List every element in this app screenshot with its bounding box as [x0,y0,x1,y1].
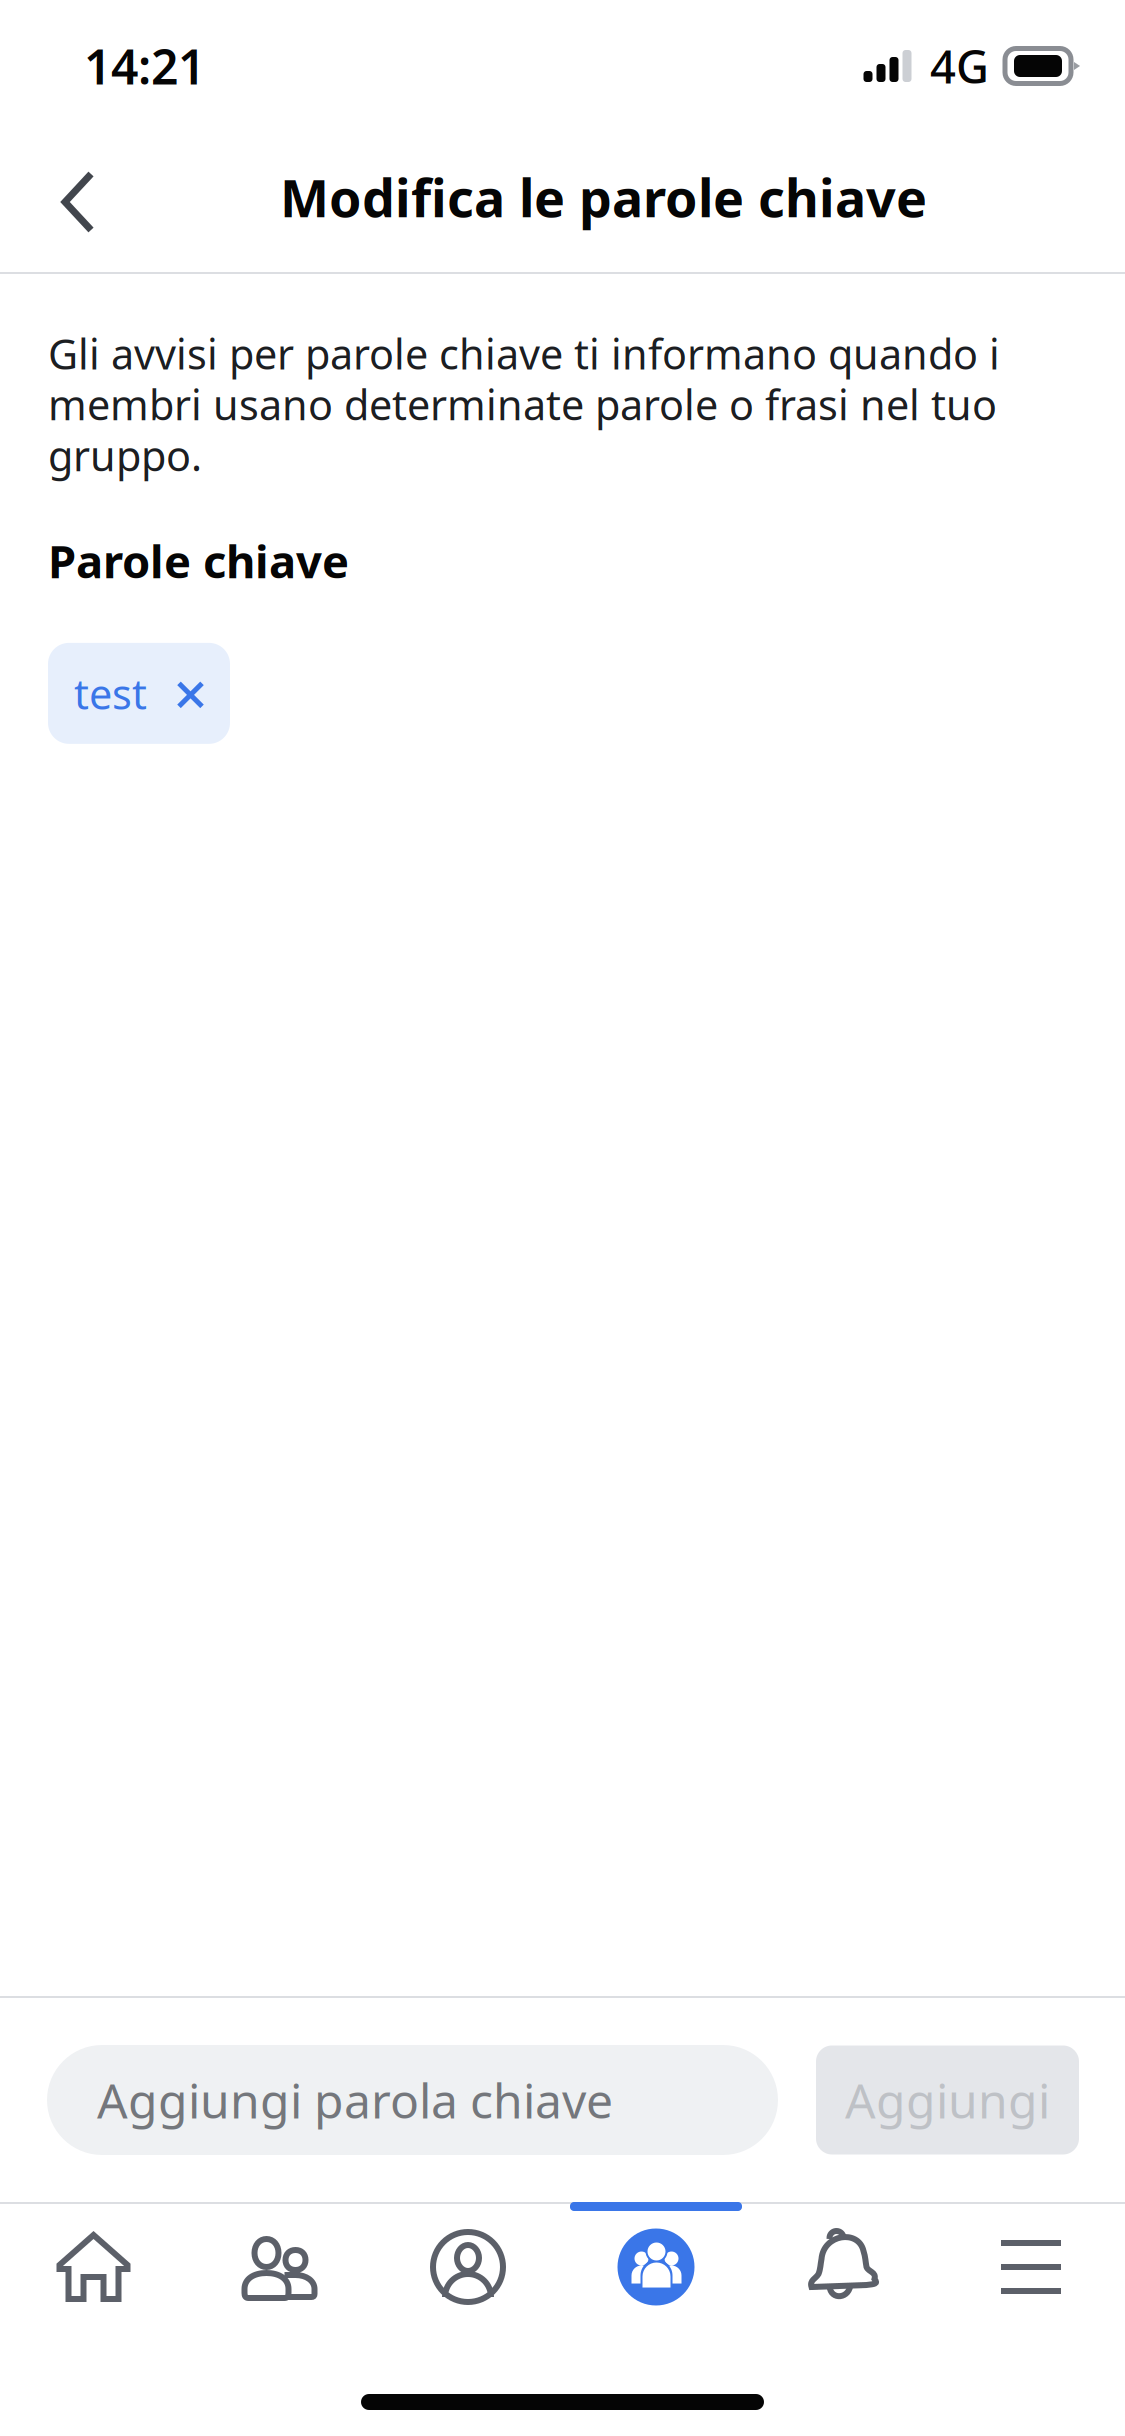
staticText: Gli avvisi per parole chiave ti informan… [48,326,1000,483]
button[interactable]: Aggiungi [816,2045,1079,2154]
staticText: Parole chiave [48,531,349,591]
button[interactable]: Aggiungi parola chiave [47,2045,778,2155]
button[interactable]: Indietro [0,132,156,272]
button[interactable]: Profilo [374,2211,562,2323]
button[interactable]: Amici [187,2211,374,2323]
staticText: 14:21 [84,34,205,98]
button[interactable]: Gruppi [562,2211,750,2323]
button[interactable]: Menu [937,2211,1125,2323]
button[interactable]: Notifiche [750,2211,937,2323]
button[interactable]: Home [0,2211,187,2323]
staticText: Modifica le parole chiave [280,162,927,232]
staticText: Aggiungi [845,2068,1050,2132]
button[interactable]: test [48,643,230,744]
staticText: Aggiungi parola chiave [97,2068,613,2132]
staticText: 4G [930,36,989,96]
staticText: test [74,666,147,721]
